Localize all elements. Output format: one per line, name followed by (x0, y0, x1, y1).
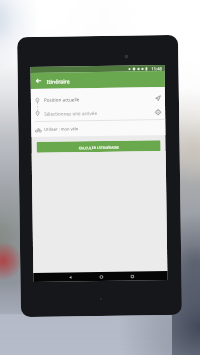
staticText: 11:48 (151, 66, 163, 71)
button[interactable]: Utiliser : mon vélo (31, 120, 165, 137)
button[interactable]: Sélectionnez une arrivée (31, 105, 165, 120)
staticText: Itinéraire (47, 77, 70, 85)
button[interactable]: Recent apps (127, 271, 136, 281)
button[interactable]: Home (96, 272, 105, 281)
button[interactable]: Back (65, 272, 74, 281)
button[interactable]: Back (33, 75, 45, 87)
staticText: Position actuelle (44, 96, 80, 103)
button[interactable]: Position actuelle (31, 91, 165, 107)
staticText: CALCULER L'ITINÉRAIRE (79, 145, 120, 149)
staticText: Utiliser : mon vélo (44, 126, 78, 132)
staticText: Sélectionnez une arrivée (44, 110, 97, 117)
button[interactable]: CALCULER L'ITINÉRAIRE (36, 140, 161, 153)
button[interactable]: Choose on map (151, 105, 165, 118)
button[interactable]: Use my location (151, 91, 165, 105)
